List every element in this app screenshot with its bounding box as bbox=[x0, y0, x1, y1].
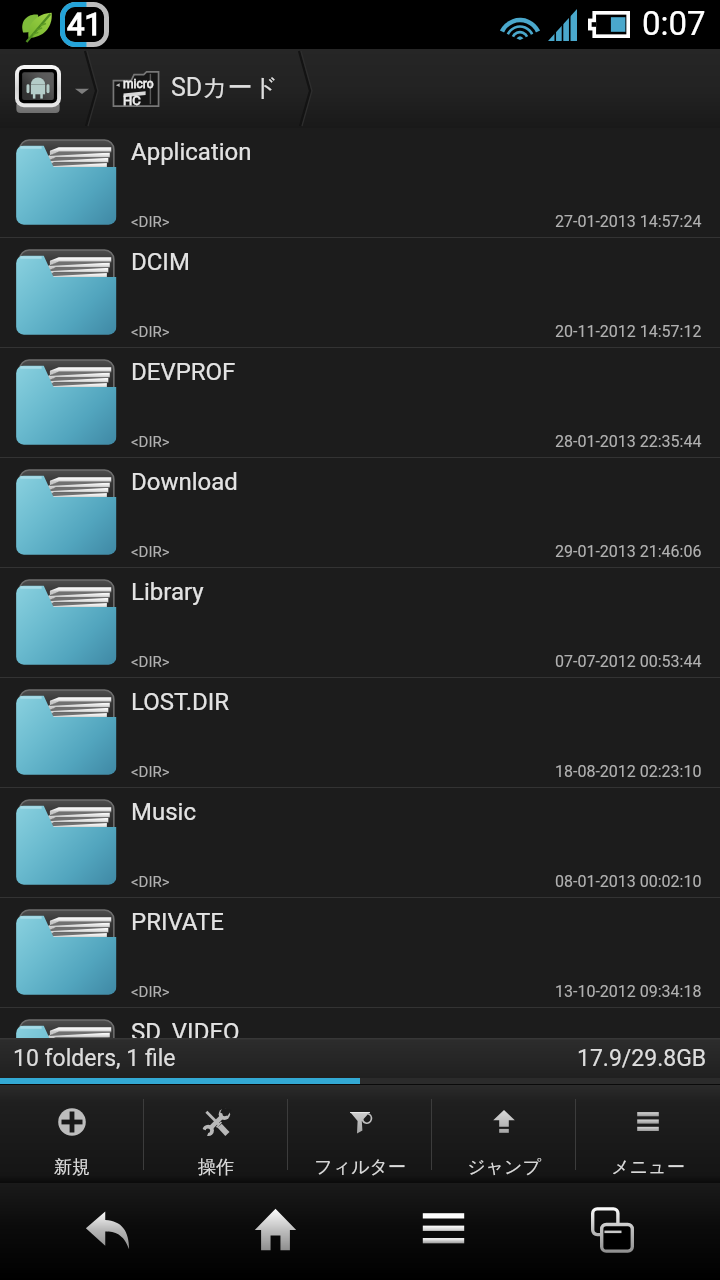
staticText: 13-10-2012 09:34:18 bbox=[555, 982, 702, 1001]
button[interactable]: Back bbox=[23, 1183, 191, 1280]
staticText: PRIVATE bbox=[131, 908, 224, 936]
staticText: Library bbox=[131, 578, 204, 606]
button[interactable]: Application bbox=[0, 128, 720, 238]
button[interactable]: SD_VIDEO bbox=[0, 1008, 720, 1038]
button[interactable]: 新規 bbox=[0, 1085, 144, 1183]
button[interactable]: Music bbox=[0, 788, 720, 898]
staticText: <DIR> bbox=[131, 433, 170, 451]
button[interactable]: LOST.DIR bbox=[0, 678, 720, 788]
staticText: 17.9/29.8GB bbox=[577, 1045, 707, 1072]
staticText: 20-11-2012 14:57:12 bbox=[555, 322, 702, 341]
button[interactable]: 操作 bbox=[144, 1085, 288, 1183]
staticText: メニュー bbox=[611, 1156, 685, 1179]
staticText: Application bbox=[131, 138, 252, 166]
staticText: <DIR> bbox=[131, 983, 170, 1001]
button[interactable]: Home bbox=[191, 1183, 359, 1280]
button[interactable]: ジャンプ bbox=[432, 1085, 576, 1183]
staticText: 08-01-2013 00:02:10 bbox=[555, 872, 702, 891]
button[interactable]: フィルター bbox=[288, 1085, 432, 1183]
staticText: SDカード bbox=[171, 72, 279, 103]
button[interactable]: Menu bbox=[359, 1183, 528, 1280]
staticText: 新規 bbox=[54, 1156, 90, 1179]
staticText: 28-01-2013 22:35:44 bbox=[555, 432, 702, 451]
staticText: 10 folders, 1 file bbox=[13, 1045, 176, 1072]
staticText: 27-01-2013 14:57:24 bbox=[555, 212, 702, 231]
staticText: <DIR> bbox=[131, 653, 170, 671]
staticText: HC bbox=[123, 93, 141, 108]
button[interactable]: Storage root bbox=[15, 65, 61, 113]
button[interactable]: Library bbox=[0, 568, 720, 678]
staticText: 41 bbox=[67, 6, 102, 42]
staticText: DCIM bbox=[131, 248, 190, 276]
staticText: フィルター bbox=[314, 1156, 406, 1179]
staticText: 07-07-2012 00:53:44 bbox=[555, 652, 702, 671]
button[interactable]: DEVPROF bbox=[0, 348, 720, 458]
button[interactable]: メニュー bbox=[576, 1085, 720, 1183]
button[interactable]: Recent apps bbox=[528, 1183, 697, 1280]
staticText: 操作 bbox=[198, 1156, 234, 1179]
button[interactable]: DCIM bbox=[0, 238, 720, 348]
staticText: LOST.DIR bbox=[131, 688, 230, 716]
staticText: ジャンプ bbox=[467, 1156, 541, 1179]
staticText: 0:07 bbox=[642, 4, 706, 43]
staticText: micro bbox=[123, 77, 154, 91]
staticText: <DIR> bbox=[131, 213, 170, 231]
staticText: SD_VIDEO bbox=[131, 1018, 240, 1038]
staticText: 18-08-2012 02:23:10 bbox=[555, 762, 702, 781]
staticText: <DIR> bbox=[131, 323, 170, 341]
staticText: 29-01-2013 21:46:06 bbox=[555, 542, 702, 561]
staticText: <DIR> bbox=[131, 763, 170, 781]
staticText: DEVPROF bbox=[131, 358, 236, 386]
button[interactable]: Download bbox=[0, 458, 720, 568]
button[interactable]: PRIVATE bbox=[0, 898, 720, 1008]
staticText: <DIR> bbox=[131, 543, 170, 561]
staticText: <DIR> bbox=[131, 873, 170, 891]
staticText: Download bbox=[131, 468, 238, 496]
staticText: Music bbox=[131, 798, 196, 826]
